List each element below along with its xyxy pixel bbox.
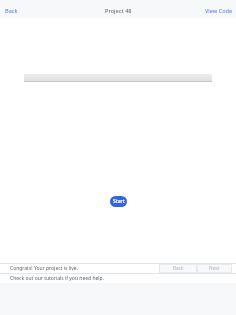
staticText: Next [209, 265, 220, 272]
staticText: Project 48 [105, 7, 132, 15]
button[interactable]: Start [110, 196, 127, 207]
staticText: Congrats! Your project is live. [10, 265, 78, 272]
button[interactable]: Next [198, 265, 231, 272]
staticText: Check out our tutorials if you need help… [10, 275, 105, 282]
button[interactable]: View Code [201, 4, 236, 18]
button[interactable]: Back [0, 4, 23, 18]
staticText: Start [113, 198, 125, 205]
staticText: Back [173, 265, 184, 272]
button[interactable]: Back [160, 265, 196, 272]
staticText: View Code [205, 7, 233, 15]
staticText: Back [5, 7, 18, 15]
